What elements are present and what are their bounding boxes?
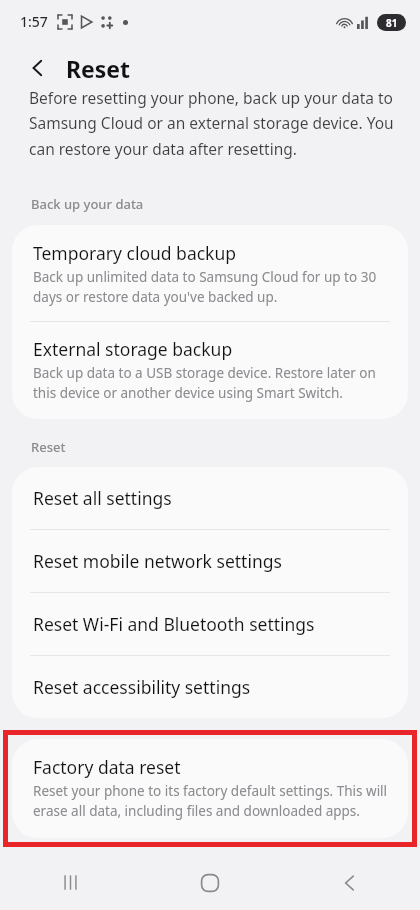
staticText: Reset mobile network settings [33,549,282,573]
staticText: Reset your phone to its factory default … [33,782,390,820]
button[interactable]: Temporary cloud backup [12,225,408,321]
staticText: Back up data to a USB storage device. Re… [33,364,390,402]
button[interactable]: Reset accessibility settings [12,656,408,718]
staticText: 81 [386,16,398,30]
button[interactable]: Back [280,855,420,910]
staticText: Reset Wi-Fi and Bluetooth settings [33,612,315,636]
staticText: Temporary cloud backup [33,241,237,265]
button[interactable]: Back [22,52,54,84]
staticText: External storage backup [33,337,233,361]
button[interactable]: Reset all settings [12,467,408,529]
staticText: Before resetting your phone, back up you… [29,92,396,160]
staticText: Reset [31,438,66,456]
button[interactable]: Home [140,855,280,910]
staticText: Reset all settings [33,486,172,510]
staticText: 1:57 [20,12,48,31]
button[interactable]: Recents [0,855,140,910]
staticText: Back up unlimited data to Samsung Cloud … [33,268,390,306]
staticText: Back up your data [31,195,144,213]
button[interactable]: Reset mobile network settings [12,530,408,592]
staticText: Reset accessibility settings [33,675,251,699]
button[interactable]: External storage backup [12,322,408,419]
staticText: Reset [66,53,131,84]
staticText: Factory data reset [33,755,181,779]
button[interactable]: Factory data reset [12,739,408,838]
button[interactable]: Reset Wi-Fi and Bluetooth settings [12,593,408,655]
button[interactable]: Factory data reset [12,739,408,838]
